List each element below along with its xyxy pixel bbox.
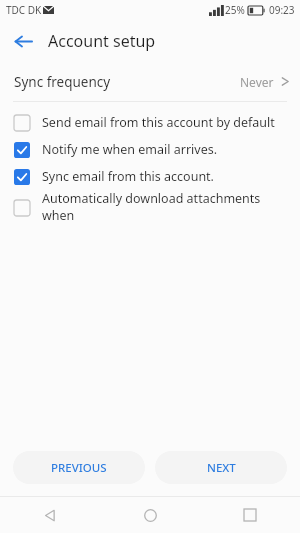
staticText: Account setup bbox=[48, 30, 156, 52]
button[interactable]: Sync frequency bbox=[0, 62, 300, 101]
staticText: Automatically download attachments when bbox=[42, 190, 288, 224]
button[interactable]: Home bbox=[100, 497, 200, 533]
button[interactable]: Send email from this account by default bbox=[0, 109, 300, 136]
button[interactable]: NEXT bbox=[155, 451, 287, 484]
button[interactable]: Notify me when email arrives. bbox=[0, 136, 300, 163]
button[interactable]: Recents bbox=[200, 497, 300, 533]
staticText: PREVIOUS bbox=[51, 460, 107, 476]
staticText: Sync frequency bbox=[14, 73, 111, 91]
staticText: 25% bbox=[225, 3, 245, 17]
staticText: Never bbox=[240, 74, 274, 90]
staticText: NEXT bbox=[207, 460, 236, 476]
button[interactable]: Back bbox=[0, 497, 100, 533]
staticText: Sync email from this account. bbox=[42, 168, 214, 185]
button[interactable]: PREVIOUS bbox=[13, 451, 145, 484]
button[interactable]: Automatically download attachments when bbox=[0, 190, 300, 226]
staticText: Send email from this account by default bbox=[42, 114, 275, 131]
staticText: Notify me when email arrives. bbox=[42, 141, 218, 158]
staticText: TDC DK bbox=[6, 3, 42, 17]
staticText: 09:23 bbox=[269, 3, 295, 17]
button[interactable]: Back bbox=[8, 26, 38, 56]
button[interactable]: Sync email from this account. bbox=[0, 163, 300, 190]
